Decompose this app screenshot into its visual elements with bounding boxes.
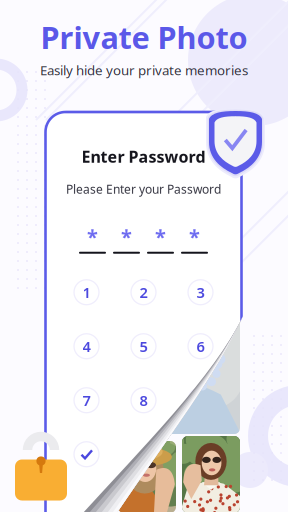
button[interactable]: 9 bbox=[188, 388, 213, 413]
button[interactable]: 4 bbox=[74, 334, 99, 359]
button[interactable]: Confirm password bbox=[74, 442, 99, 467]
button[interactable]: 6 bbox=[188, 334, 213, 359]
staticText: Private Photo bbox=[40, 17, 247, 57]
button[interactable]: 7 bbox=[74, 388, 99, 413]
staticText: 4 bbox=[82, 336, 90, 356]
staticText: * bbox=[121, 223, 132, 250]
button[interactable]: 1 bbox=[74, 280, 99, 305]
button[interactable]: 3 bbox=[188, 280, 213, 305]
staticText: 6 bbox=[196, 336, 204, 356]
staticText: Please Enter your Password bbox=[66, 181, 221, 197]
button[interactable]: 5 bbox=[131, 334, 156, 359]
staticText: 3 bbox=[196, 282, 204, 302]
staticText: 8 bbox=[139, 390, 147, 410]
staticText: 5 bbox=[139, 336, 147, 356]
button[interactable]: 8 bbox=[131, 388, 156, 413]
staticText: * bbox=[189, 223, 200, 250]
staticText: 2 bbox=[139, 282, 147, 302]
staticText: Enter Password bbox=[81, 146, 205, 167]
staticText: 1 bbox=[82, 282, 90, 302]
staticText: * bbox=[87, 223, 98, 250]
staticText: 9 bbox=[196, 390, 204, 410]
staticText: Easily hide your private memories bbox=[40, 61, 248, 79]
staticText: * bbox=[155, 223, 166, 250]
staticText: 7 bbox=[82, 390, 90, 410]
button[interactable]: 2 bbox=[131, 280, 156, 305]
